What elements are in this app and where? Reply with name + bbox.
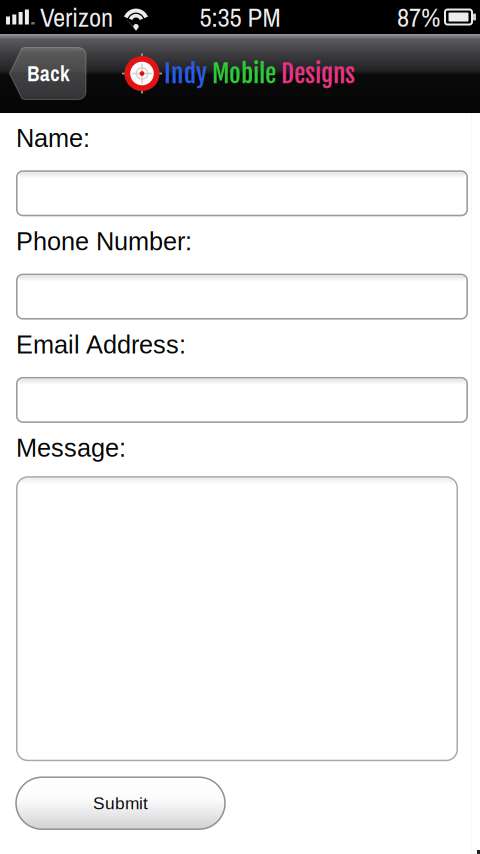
staticText: Submit — [93, 793, 148, 813]
button[interactable]: Submit — [16, 777, 225, 829]
staticText: 5:35 PM — [199, 0, 280, 35]
staticText: Verizon — [40, 0, 113, 35]
staticText: Message: — [16, 434, 126, 462]
staticText: Designs — [276, 58, 355, 89]
staticText: 87% — [397, 0, 440, 35]
staticText: Name: — [16, 124, 90, 152]
staticText: Email Address: — [16, 331, 186, 359]
button[interactable]: Back — [8, 47, 86, 99]
staticText: Phone Number: — [16, 227, 192, 256]
staticText: Mobile — [207, 58, 276, 89]
staticText: Indy — [164, 58, 207, 89]
staticText: Back — [27, 59, 70, 88]
